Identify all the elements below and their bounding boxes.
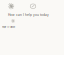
button[interactable]: New chat	[30, 4, 36, 8]
staticText: How can I help you today	[8, 13, 49, 17]
staticText: Reply to Claude	[2, 26, 15, 28]
button[interactable]: Claude	[8, 3, 14, 9]
